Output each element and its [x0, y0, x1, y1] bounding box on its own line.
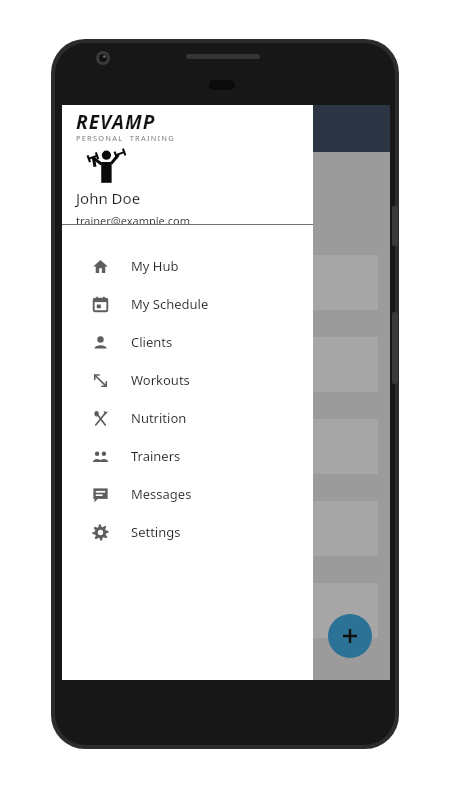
button[interactable]: Settings [62, 513, 313, 551]
staticText: Trainers [131, 447, 181, 465]
staticText: My Schedule [131, 295, 209, 313]
staticText: Nutrition [131, 409, 187, 427]
staticText: PERSONAL TRAINING [76, 133, 175, 143]
staticText: Workouts [131, 371, 190, 389]
button[interactable]: Messages [62, 475, 313, 513]
staticText: My Hub [131, 257, 179, 275]
staticText: REVAMP [76, 109, 156, 135]
button[interactable]: My Hub [62, 247, 313, 285]
button[interactable]: Trainers [62, 437, 313, 475]
staticText: Clients [131, 333, 173, 351]
staticText: John Doe [76, 188, 141, 208]
staticText: Settings [131, 523, 181, 541]
staticText: Messages [131, 485, 192, 503]
button[interactable]: Add [328, 614, 372, 658]
staticText: trainer@example.com [76, 213, 190, 224]
button[interactable]: Workouts [62, 361, 313, 399]
button[interactable]: Clients [62, 323, 313, 361]
button[interactable]: My Schedule [62, 285, 313, 323]
button[interactable]: Nutrition [62, 399, 313, 437]
